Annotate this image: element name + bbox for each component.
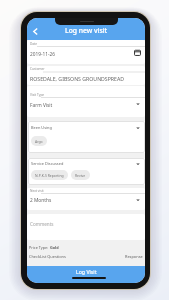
- button[interactable]: Visit Type: [27, 86, 145, 117]
- button[interactable]: Log Visit: [27, 266, 145, 283]
- button[interactable]: N-P-K-S Reporting: [31, 170, 68, 180]
- button[interactable]: Revive: [71, 170, 90, 180]
- staticText: Log new visit: [65, 26, 108, 35]
- staticText: Farm Visit: [30, 102, 53, 109]
- button[interactable]: Customer: [27, 66, 145, 85]
- staticText: Revive: [75, 173, 86, 178]
- staticText: Argo: [35, 139, 43, 144]
- staticText: 2019-11-26: [30, 51, 56, 58]
- staticText: Been Using: [31, 125, 52, 130]
- button[interactable]: Comments: [27, 214, 145, 240]
- staticText: Customer: [30, 67, 45, 71]
- staticText: CheckList Questions: [29, 254, 66, 259]
- staticText: Visit Type: [30, 93, 45, 97]
- staticText: Service Discussed: [31, 161, 64, 166]
- button[interactable]: Argo: [31, 136, 47, 146]
- button[interactable]: Service Discussed: [28, 158, 145, 185]
- button[interactable]: Date: [27, 40, 145, 64]
- staticText: Gold: [50, 245, 59, 250]
- staticText: 2 Months: [30, 197, 52, 204]
- staticText: Date: [30, 42, 38, 46]
- staticText: Log Visit: [76, 268, 97, 275]
- button[interactable]: Next visit: [27, 188, 145, 210]
- staticText: Next visit: [30, 189, 44, 193]
- staticText: N-P-K-S Reporting: [35, 173, 64, 178]
- staticText: ROSEDALE, GIBSONS GROUNDSPREAD: [30, 75, 125, 82]
- staticText: Response: [125, 254, 143, 259]
- staticText: Comments: [30, 221, 54, 227]
- button[interactable]: Back: [28, 24, 42, 38]
- staticText: Price Type:: [29, 245, 50, 250]
- button[interactable]: Been Using: [28, 121, 145, 153]
